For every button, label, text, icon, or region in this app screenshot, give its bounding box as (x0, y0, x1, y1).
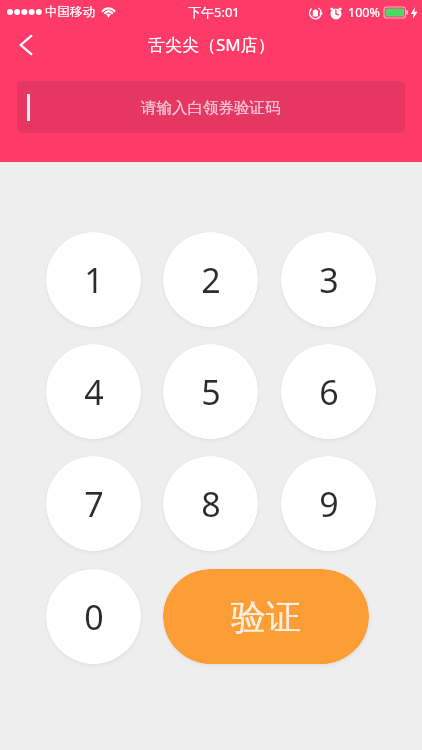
staticText: 验证 (231, 595, 301, 639)
staticText: 100% (348, 4, 380, 21)
button[interactable]: 8 (163, 456, 258, 551)
staticText: 中国移动 (45, 4, 95, 20)
button[interactable]: 验证 (163, 569, 369, 664)
button[interactable]: 4 (46, 344, 141, 439)
staticText: 请输入白领券验证码 (141, 98, 281, 118)
staticText: 9 (319, 481, 339, 527)
button[interactable]: 2 (163, 232, 258, 327)
staticText: 6 (319, 369, 339, 415)
button[interactable]: 7 (46, 456, 141, 551)
staticText: 0 (84, 594, 104, 640)
staticText: 下午5:01 (188, 3, 240, 21)
staticText: 8 (201, 481, 221, 527)
button[interactable]: 请输入白领券验证码 (17, 81, 405, 133)
button[interactable]: 6 (281, 344, 376, 439)
staticText: 舌尖尖（SM店） (148, 33, 275, 56)
button[interactable]: 9 (281, 456, 376, 551)
button[interactable]: 0 (46, 569, 141, 664)
staticText: 2 (201, 257, 221, 303)
staticText: 3 (319, 257, 339, 303)
button[interactable]: 1 (46, 232, 141, 327)
button[interactable]: Back (0, 22, 48, 68)
staticText: 1 (84, 257, 104, 303)
staticText: 4 (84, 369, 104, 415)
button[interactable]: 5 (163, 344, 258, 439)
staticText: 5 (201, 369, 221, 415)
staticText: 7 (84, 481, 104, 527)
button[interactable]: 3 (281, 232, 376, 327)
